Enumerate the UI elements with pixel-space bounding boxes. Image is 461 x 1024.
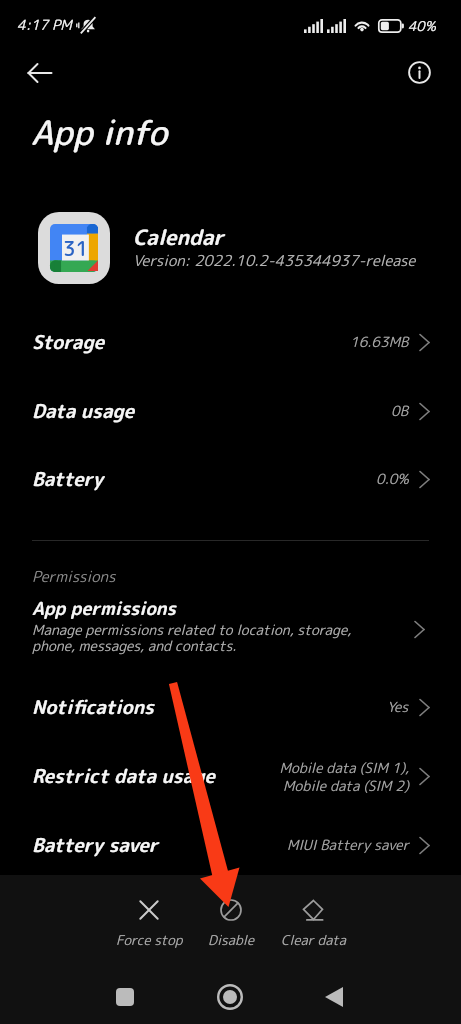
staticText: Clear data	[281, 930, 346, 949]
staticText: 0B	[391, 401, 409, 421]
staticText: Force stop	[116, 930, 183, 949]
staticText: Mobile data (SIM 1), Mobile data (SIM 2)	[279, 758, 409, 795]
button[interactable]: Back	[309, 972, 359, 1022]
button[interactable]: App permissions	[0, 592, 461, 660]
staticText: Calendar	[133, 222, 224, 251]
button[interactable]: Force stop	[108, 898, 190, 949]
staticText: 4:17 PM	[17, 15, 72, 35]
staticText: Battery saver	[32, 832, 159, 859]
staticText: App permissions	[32, 596, 176, 621]
staticText: Version: 2022.10.2-435344937-release	[133, 250, 416, 271]
staticText: Disable	[208, 930, 255, 949]
button[interactable]: Disable	[190, 898, 272, 949]
button[interactable]: Battery saver	[0, 811, 461, 879]
staticText: Restrict data usage	[32, 763, 215, 790]
staticText: 40%	[408, 16, 436, 35]
button[interactable]: Home	[205, 972, 255, 1022]
staticText: 0.0%	[376, 469, 409, 489]
staticText: Data usage	[32, 398, 135, 425]
staticText: Battery	[32, 466, 104, 493]
staticText: Yes	[387, 697, 409, 717]
button[interactable]: Data usage	[0, 377, 461, 445]
staticText: 16.63MB	[350, 332, 409, 352]
button[interactable]: Restrict data usage	[0, 742, 461, 810]
staticText: Notifications	[32, 694, 154, 721]
staticText: 31	[63, 234, 89, 260]
button[interactable]: Storage	[0, 308, 461, 376]
staticText: Permissions	[32, 566, 116, 587]
staticText: Storage	[32, 329, 105, 356]
staticText: Manage permissions related to location, …	[32, 620, 352, 656]
button[interactable]: About this screen	[402, 55, 437, 90]
button[interactable]: Recent apps	[100, 972, 150, 1022]
button[interactable]: Clear data	[272, 898, 354, 949]
staticText: MIUI Battery saver	[287, 835, 409, 855]
button[interactable]: Battery	[0, 445, 461, 513]
button[interactable]: Notifications	[0, 673, 461, 741]
button[interactable]: Back	[22, 55, 58, 91]
staticText: App info	[31, 108, 168, 155]
